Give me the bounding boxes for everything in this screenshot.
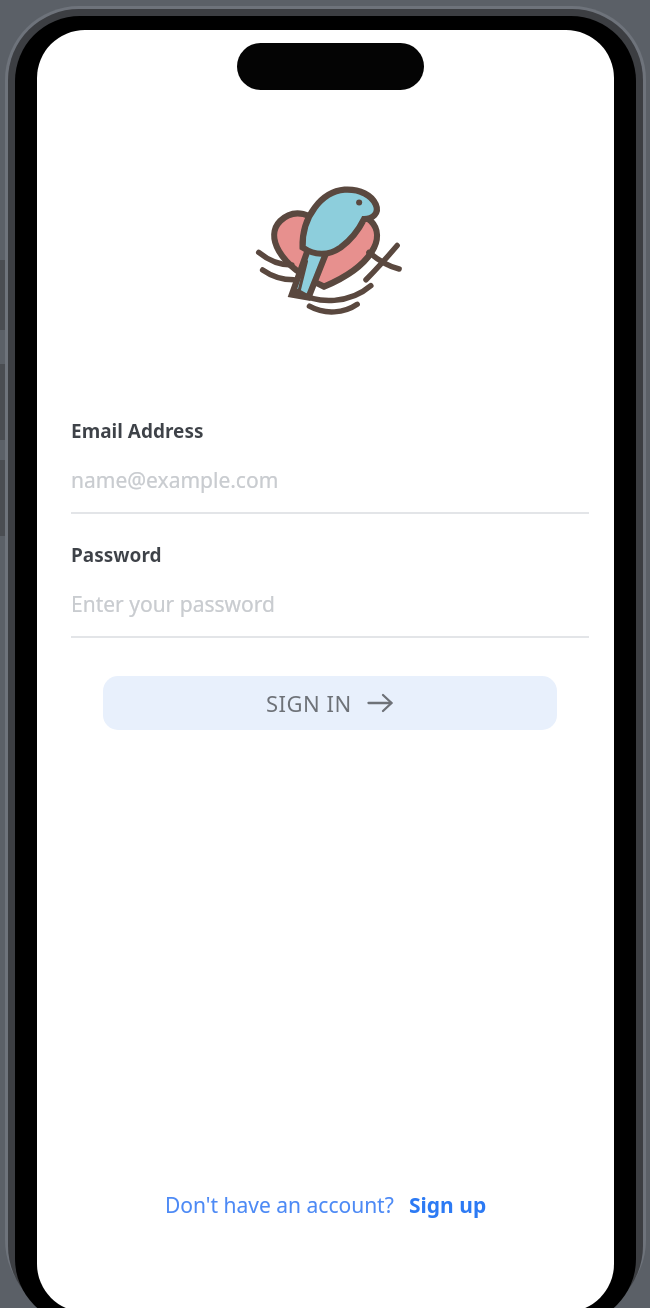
staticText: Password — [71, 542, 162, 568]
button[interactable]: SIGN IN — [103, 676, 557, 730]
other: App logo — [248, 175, 404, 317]
staticText: Email Address — [71, 418, 204, 444]
button[interactable]: Don't have an account? — [37, 1182, 614, 1228]
staticText: SIGN IN — [266, 688, 352, 718]
button[interactable]: Password — [71, 542, 589, 638]
staticText: name@example.com — [71, 466, 279, 495]
staticText: Don't have an account? — [165, 1191, 394, 1220]
staticText: Sign up — [409, 1191, 487, 1220]
button[interactable]: Email Address — [71, 418, 589, 514]
staticText: Enter your password — [71, 590, 275, 619]
